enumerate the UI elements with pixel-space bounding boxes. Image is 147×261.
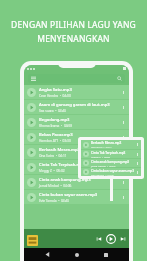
staticText: Berkasih Mesra.mp3	[91, 141, 122, 145]
button[interactable]: Recents	[100, 249, 111, 260]
staticText: Angka Satu.mp3	[39, 87, 72, 93]
button[interactable]: Menu	[28, 74, 125, 83]
button[interactable]: Play	[106, 234, 116, 244]
staticText: Cinta bukan sayur asem.mp3	[39, 192, 98, 198]
button[interactable]: Cinta Tak Terpisah.mp3	[24, 160, 129, 174]
staticText: Rhoma Irama • 04:59	[39, 124, 73, 128]
button[interactable]: Cinta bukan sayur asem.mp3	[81, 168, 141, 176]
button[interactable]: Previous	[96, 236, 102, 242]
button[interactable]: Berkasih Mesra.mp3	[81, 140, 141, 149]
button[interactable]: More options	[120, 115, 126, 129]
button[interactable]: Album art	[27, 235, 38, 246]
staticText: Berkasih Mesra.mp3	[39, 147, 80, 153]
button[interactable]: Cinta Tak Terpisah.mp3	[81, 150, 141, 158]
staticText: Evie Tamala • 04:45	[91, 173, 114, 176]
staticText: Cinta Tak Terpisah.mp3	[91, 151, 126, 155]
staticText: Begadang.mp3	[39, 117, 70, 123]
button[interactable]: Begadang.mp3	[24, 115, 129, 129]
button[interactable]: Cinta anak kampung.mp3	[81, 159, 141, 167]
staticText: Asam di gunung garam di laut.mp3	[39, 102, 110, 108]
button[interactable]: Home	[71, 249, 82, 260]
button[interactable]: More options	[120, 175, 126, 189]
button[interactable]: Cinta bukan sayur asem.mp3	[24, 190, 129, 204]
button[interactable]: More options	[120, 85, 126, 99]
staticText: Hamdan ATT • 03:30	[39, 139, 71, 143]
button[interactable]: More options	[120, 130, 126, 144]
other: Menu	[31, 76, 36, 81]
staticText: Sea suara • 04:45	[39, 109, 67, 113]
button[interactable]: More options	[120, 145, 126, 159]
staticText: Cinta anak kampung.mp3	[39, 177, 91, 183]
staticText: Jamal Mirdad • 04:06	[91, 164, 116, 167]
button[interactable]: Cinta anak kampung.mp3	[24, 175, 129, 189]
button[interactable]: Bekas Pacar.mp3	[24, 130, 129, 144]
button[interactable]: Berkasih Mesra.mp3	[78, 137, 144, 179]
staticText: Cinta bukan sayur asem.mp3	[91, 169, 134, 173]
staticText: Ona Sutra • 04:11	[91, 145, 112, 148]
button[interactable]: More options	[120, 160, 126, 174]
button[interactable]: Berkasih Mesra.mp3	[24, 145, 129, 159]
staticText: Cece Hendra • 04:00	[39, 94, 71, 98]
button[interactable]: Angka Satu.mp3	[24, 85, 129, 99]
staticText: Evie Tamala • 04:45	[39, 199, 70, 203]
other: Search	[117, 76, 122, 81]
staticText: Ona Sutra • 04:11	[39, 154, 67, 158]
staticText: Jamal Mirdad • 04:06	[39, 184, 72, 188]
staticText: Meggy Z • 05:02	[39, 169, 65, 173]
button[interactable]: Back	[42, 249, 53, 260]
staticText: Cinta Tak Terpisah.mp3	[39, 162, 86, 168]
staticText: Bekas Pacar.mp3	[39, 132, 73, 138]
staticText: Cinta anak kampung.mp3	[91, 160, 130, 164]
button[interactable]: Next	[120, 236, 126, 242]
staticText: DENGAN PILIHAN LAGU YANG	[11, 19, 136, 31]
button[interactable]: Asam di gunung garam di laut.mp3	[24, 100, 129, 114]
staticText: MENYENANGKAN	[37, 33, 110, 45]
button[interactable]: More options	[120, 190, 126, 204]
staticText: Meggy Z • 05:02	[91, 155, 111, 158]
button[interactable]: More options	[120, 100, 126, 114]
